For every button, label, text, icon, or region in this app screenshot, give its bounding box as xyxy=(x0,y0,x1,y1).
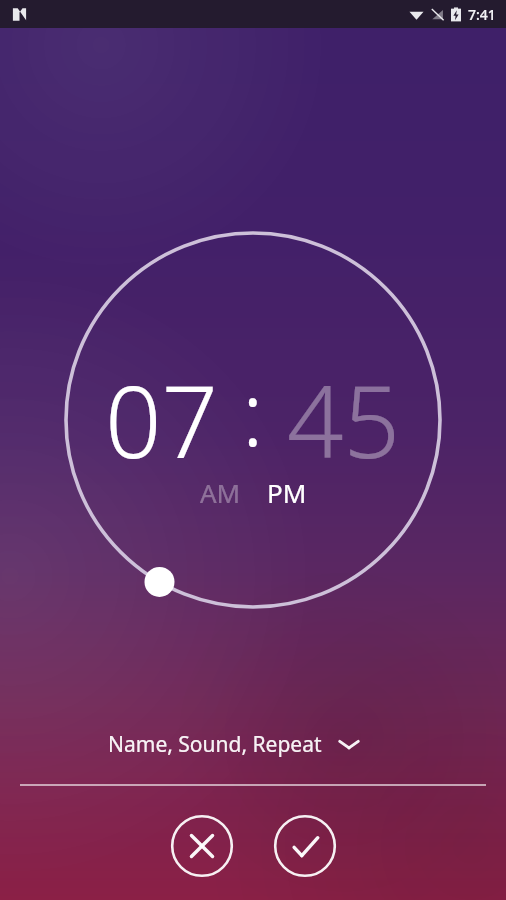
staticText: AM xyxy=(200,475,241,510)
button[interactable]: Confirm xyxy=(273,814,337,878)
button[interactable]: PM xyxy=(263,473,311,512)
staticText: 7:41 xyxy=(468,5,496,24)
staticText: PM xyxy=(267,475,307,510)
staticText: Name, Sound, Repeat xyxy=(108,730,322,759)
button[interactable]: Cancel xyxy=(170,814,234,878)
button[interactable]: 45 xyxy=(287,352,401,487)
staticText: : xyxy=(219,352,287,472)
button[interactable]: 07 xyxy=(105,352,219,487)
button[interactable]: AM xyxy=(196,473,245,512)
button[interactable]: Name, Sound, Repeat xyxy=(100,726,368,763)
